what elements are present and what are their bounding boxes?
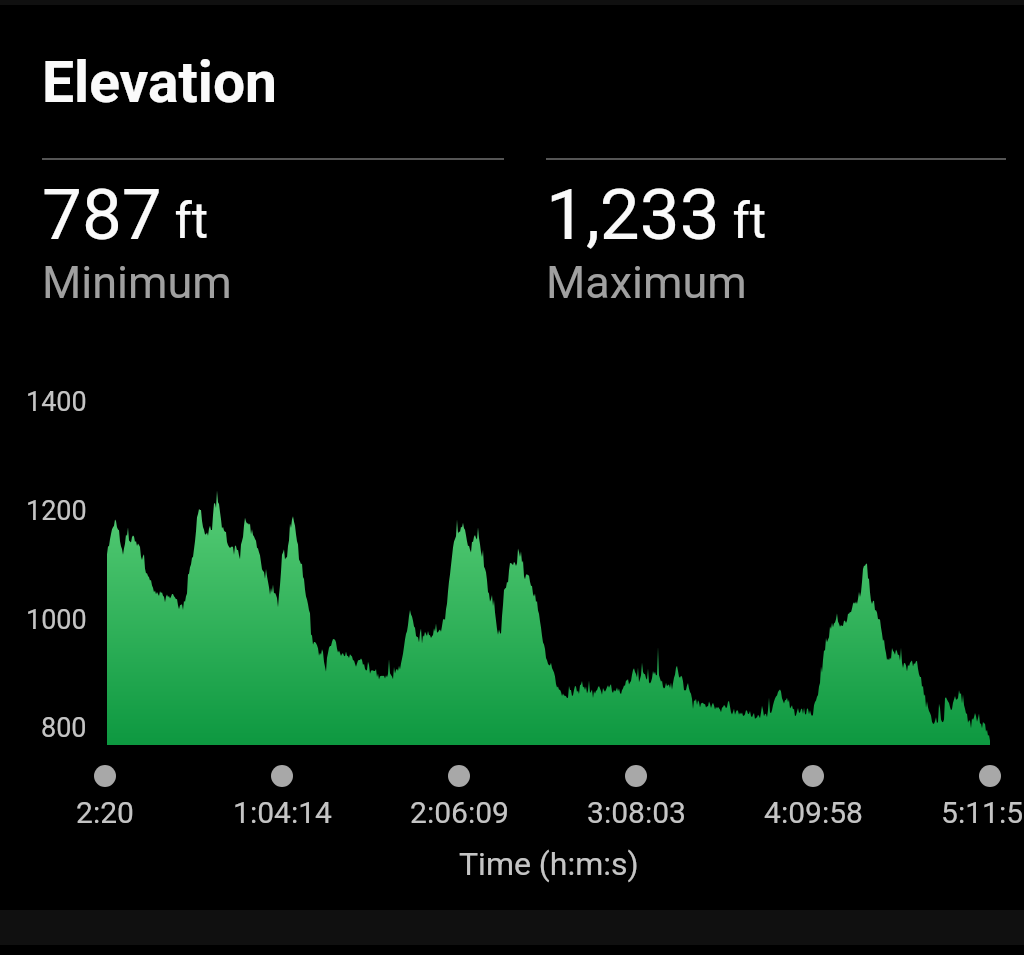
staticText: Elevation [42,49,278,116]
button[interactable]: Elevation over time chart [107,390,990,745]
staticText: Minimum [42,256,232,309]
staticText: 787 [42,173,162,256]
staticText: 3:08:03 [587,795,686,830]
staticText: 1,233 [546,173,720,256]
staticText: 5:11:52 [941,795,1024,830]
staticText: 1000 [26,604,87,636]
staticText: 1200 [26,495,87,527]
staticText: Time (h:m:s) [459,845,639,883]
staticText: ft [720,192,767,251]
staticText: 800 [41,712,87,744]
staticText: 1400 [26,386,87,418]
staticText: 1:04:14 [233,795,332,830]
staticText: ft [162,192,209,251]
staticText: 2:20 [76,795,134,830]
staticText: Maximum [546,256,747,309]
staticText: 2:06:09 [410,795,509,830]
button[interactable]: 1,233 [546,173,767,309]
button[interactable]: 787 [42,173,232,309]
staticText: 4:09:58 [764,795,863,830]
